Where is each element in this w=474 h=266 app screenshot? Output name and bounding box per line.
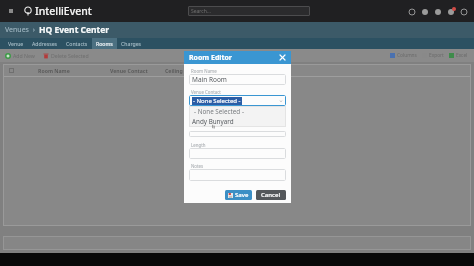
button[interactable]: Columns [390,52,417,59]
button[interactable]: Export [422,52,444,59]
staticText: Room Name [38,67,110,74]
staticText: Venue [8,40,24,47]
button[interactable]: Addresses [28,38,62,49]
button[interactable]: Select all rows [9,68,14,73]
staticText: HQ Event Center [39,24,110,36]
button[interactable]: Rooms [92,38,117,49]
button[interactable]: Notifications [446,7,455,16]
button[interactable]: Venue [4,38,28,49]
staticText: Excel [456,52,468,59]
button[interactable]: Venues [5,25,29,35]
button[interactable]: History [407,7,416,16]
button[interactable]: - None Selected - [189,106,286,116]
staticText: › [29,25,39,35]
button[interactable]: Save [225,190,252,200]
button[interactable]: Delete Selected [43,52,89,59]
staticText: Export [429,52,444,59]
staticText: Search... [191,8,211,15]
staticText: - None Selected - [194,107,244,116]
staticText: - None Selected - [193,97,241,105]
button[interactable]: Menu [5,5,17,17]
button[interactable]: Settings [420,7,429,16]
button[interactable]: - None Selected - [189,95,286,106]
button[interactable]: Help [433,7,442,16]
button[interactable]: Add New [5,52,35,59]
button[interactable]: Account [459,7,468,16]
staticText: IntelliEvent [35,4,92,18]
staticText: Length [191,142,206,148]
staticText: Contacts [66,40,88,47]
button[interactable]: Excel [449,52,468,59]
staticText: Andy Bunyard [192,117,234,126]
button[interactable]: Charges [117,38,146,49]
button[interactable]: Close [277,52,288,63]
staticText: Notes [191,163,204,169]
staticText: Venue Contact [110,67,165,74]
staticText: Save [235,191,249,199]
staticText: Addresses [32,40,58,47]
button[interactable]: Cancel [256,190,286,200]
staticText: Room Editor [189,53,232,63]
button[interactable] [189,169,286,181]
staticText: Columns [397,52,417,59]
staticText: Venues [5,25,29,35]
staticText: Cancel [261,191,281,199]
staticText: Charges [121,40,142,47]
staticText: Venue Contact [191,89,221,95]
button[interactable]: Andy Bunyard [189,116,286,127]
staticText: Main Room [192,75,227,84]
staticText: Rooms [96,40,113,47]
button[interactable]: Search... [188,6,310,16]
button[interactable]: Contacts [62,38,92,49]
button[interactable]: Main Room [189,74,286,85]
staticText: Add New [13,52,35,59]
staticText: Ceiling Height [165,67,202,74]
button[interactable] [189,148,286,159]
staticText: Delete Selected [51,52,89,59]
staticText: Room Name [191,68,217,74]
